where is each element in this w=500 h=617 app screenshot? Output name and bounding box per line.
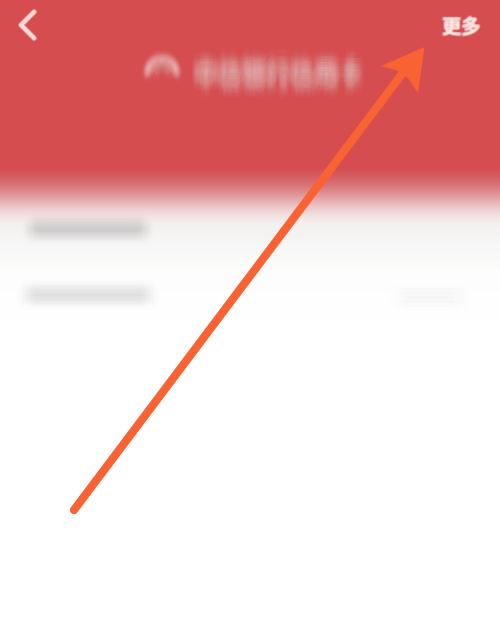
staticText: 中信银行信用卡 <box>194 58 362 93</box>
staticText: 中信银行信用卡 <box>187 67 355 101</box>
staticText: 中信银行信用卡 <box>192 55 360 89</box>
staticText: 中信银行信用卡 <box>200 70 368 105</box>
staticText: 中信银行信用卡 <box>187 63 355 98</box>
staticText: 中信银行信用卡 <box>199 38 367 73</box>
staticText: 中信银行信用卡 <box>193 59 361 94</box>
staticText: 更多 <box>441 13 479 41</box>
staticText: 中信银行信用卡 <box>188 42 356 77</box>
staticText: 中信银行信用卡 <box>190 55 358 89</box>
staticText: 中信银行信用卡 <box>192 39 360 74</box>
staticText: 中信银行信用卡 <box>192 61 360 96</box>
staticText: 中信银行信用卡 <box>187 58 355 93</box>
staticText: 中信银行信用卡 <box>193 38 361 73</box>
staticText: 中信银行信用卡 <box>189 72 357 107</box>
staticText: 中信银行信用卡 <box>196 63 364 98</box>
staticText: 中信银行信用卡 <box>195 48 363 83</box>
staticText: 中信银行信用卡 <box>201 42 369 77</box>
staticText: 更多 <box>443 12 481 40</box>
staticText: 中信银行信用卡 <box>187 62 355 97</box>
staticText: 中信银行信用卡 <box>188 38 356 73</box>
staticText: 中信银行信用卡 <box>195 62 363 97</box>
staticText: 中信银行信用卡 <box>187 51 355 86</box>
staticText: 中信银行信用卡 <box>193 42 361 77</box>
staticText: 中信银行信用卡 <box>195 52 363 87</box>
staticText: 中信银行信用卡 <box>189 53 357 88</box>
staticText: 中信银行信用卡 <box>198 72 366 107</box>
staticText: 中信银行信用卡 <box>201 45 369 79</box>
staticText: 中信银行信用卡 <box>187 50 355 85</box>
staticText: 中信银行信用卡 <box>194 52 362 87</box>
staticText: 中信银行信用卡 <box>192 70 360 105</box>
staticText: 中信银行信用卡 <box>186 53 354 88</box>
staticText: 中信银行信用卡 <box>196 53 364 88</box>
staticText: 中信银行信用卡 <box>192 38 360 73</box>
staticText: 中信银行信用卡 <box>200 41 368 76</box>
staticText: 更多 <box>443 10 481 38</box>
staticText: 中信银行信用卡 <box>195 57 363 92</box>
staticText: 中信银行信用卡 <box>194 59 362 94</box>
staticText: 中信银行信用卡 <box>202 61 370 96</box>
staticText: 更多 <box>444 10 482 38</box>
staticText: 中信银行信用卡 <box>201 58 369 93</box>
button[interactable]: 更多 <box>442 0 500 50</box>
staticText: 中信银行信用卡 <box>200 62 368 97</box>
staticText: 中信银行信用卡 <box>187 41 355 76</box>
staticText: 中信银行信用卡 <box>190 46 358 81</box>
staticText: 中信银行信用卡 <box>192 57 360 92</box>
staticText: 更多 <box>441 11 479 39</box>
staticText: 中信银行信用卡 <box>193 62 361 97</box>
staticText: 中信银行信用卡 <box>195 41 363 76</box>
staticText: 中信银行信用卡 <box>200 66 368 100</box>
staticText: 中信银行信用卡 <box>186 56 354 90</box>
staticText: 中信银行信用卡 <box>194 50 362 85</box>
staticText: 中信银行信用卡 <box>190 59 358 94</box>
staticText: 中信银行信用卡 <box>199 50 367 85</box>
staticText: 中信银行信用卡 <box>187 42 355 77</box>
staticText: 中信银行信用卡 <box>186 49 354 84</box>
button[interactable]: Back <box>0 0 58 52</box>
staticText: 中信银行信用卡 <box>200 42 368 77</box>
staticText: 中信银行信用卡 <box>199 70 367 105</box>
staticText: 中信银行信用卡 <box>201 40 369 75</box>
staticText: 中信银行信用卡 <box>193 56 361 90</box>
staticText: 中信银行信用卡 <box>200 55 368 89</box>
staticText: 中信银行信用卡 <box>190 37 358 72</box>
staticText: 更多 <box>441 10 479 38</box>
staticText: 中信银行信用卡 <box>188 45 356 79</box>
staticText: 中信银行信用卡 <box>189 59 357 94</box>
staticText: 中信银行信用卡 <box>188 41 356 76</box>
staticText: 中信银行信用卡 <box>198 50 366 85</box>
staticText: 中信银行信用卡 <box>193 37 361 72</box>
staticText: 中信银行信用卡 <box>196 62 364 97</box>
staticText: 中信银行信用卡 <box>188 64 356 99</box>
staticText: 中信银行信用卡 <box>192 44 360 78</box>
staticText: 中信银行信用卡 <box>196 59 364 94</box>
staticText: 中信银行信用卡 <box>187 49 355 84</box>
staticText: 中信银行信用卡 <box>194 63 362 98</box>
staticText: 中信银行信用卡 <box>186 64 354 99</box>
staticText: 中信银行信用卡 <box>195 44 363 78</box>
staticText: 更多 <box>443 12 481 40</box>
staticText: 中信银行信用卡 <box>188 49 356 84</box>
staticText: 中信银行信用卡 <box>188 56 356 90</box>
staticText: 中信银行信用卡 <box>186 45 354 79</box>
staticText: 中信银行信用卡 <box>199 72 367 107</box>
staticText: 中信银行信用卡 <box>201 48 369 83</box>
staticText: 中信银行信用卡 <box>194 44 362 78</box>
staticText: 中信银行信用卡 <box>200 37 368 72</box>
staticText: 更多 <box>440 9 478 37</box>
staticText: 中信银行信用卡 <box>187 47 355 82</box>
staticText: 中信银行信用卡 <box>200 63 368 98</box>
staticText: 中信银行信用卡 <box>199 49 367 84</box>
staticText: 中信银行信用卡 <box>188 50 356 85</box>
staticText: 更多 <box>441 10 479 38</box>
staticText: 中信银行信用卡 <box>188 70 356 105</box>
staticText: 中信银行信用卡 <box>189 50 357 85</box>
staticText: 中信银行信用卡 <box>193 44 361 78</box>
staticText: 中信银行信用卡 <box>198 45 366 79</box>
staticText: 中信银行信用卡 <box>188 39 356 74</box>
staticText: 更多 <box>443 11 481 39</box>
staticText: 中信银行信用卡 <box>199 67 367 101</box>
staticText: 中信银行信用卡 <box>199 48 367 83</box>
staticText: 中信银行信用卡 <box>195 60 363 95</box>
